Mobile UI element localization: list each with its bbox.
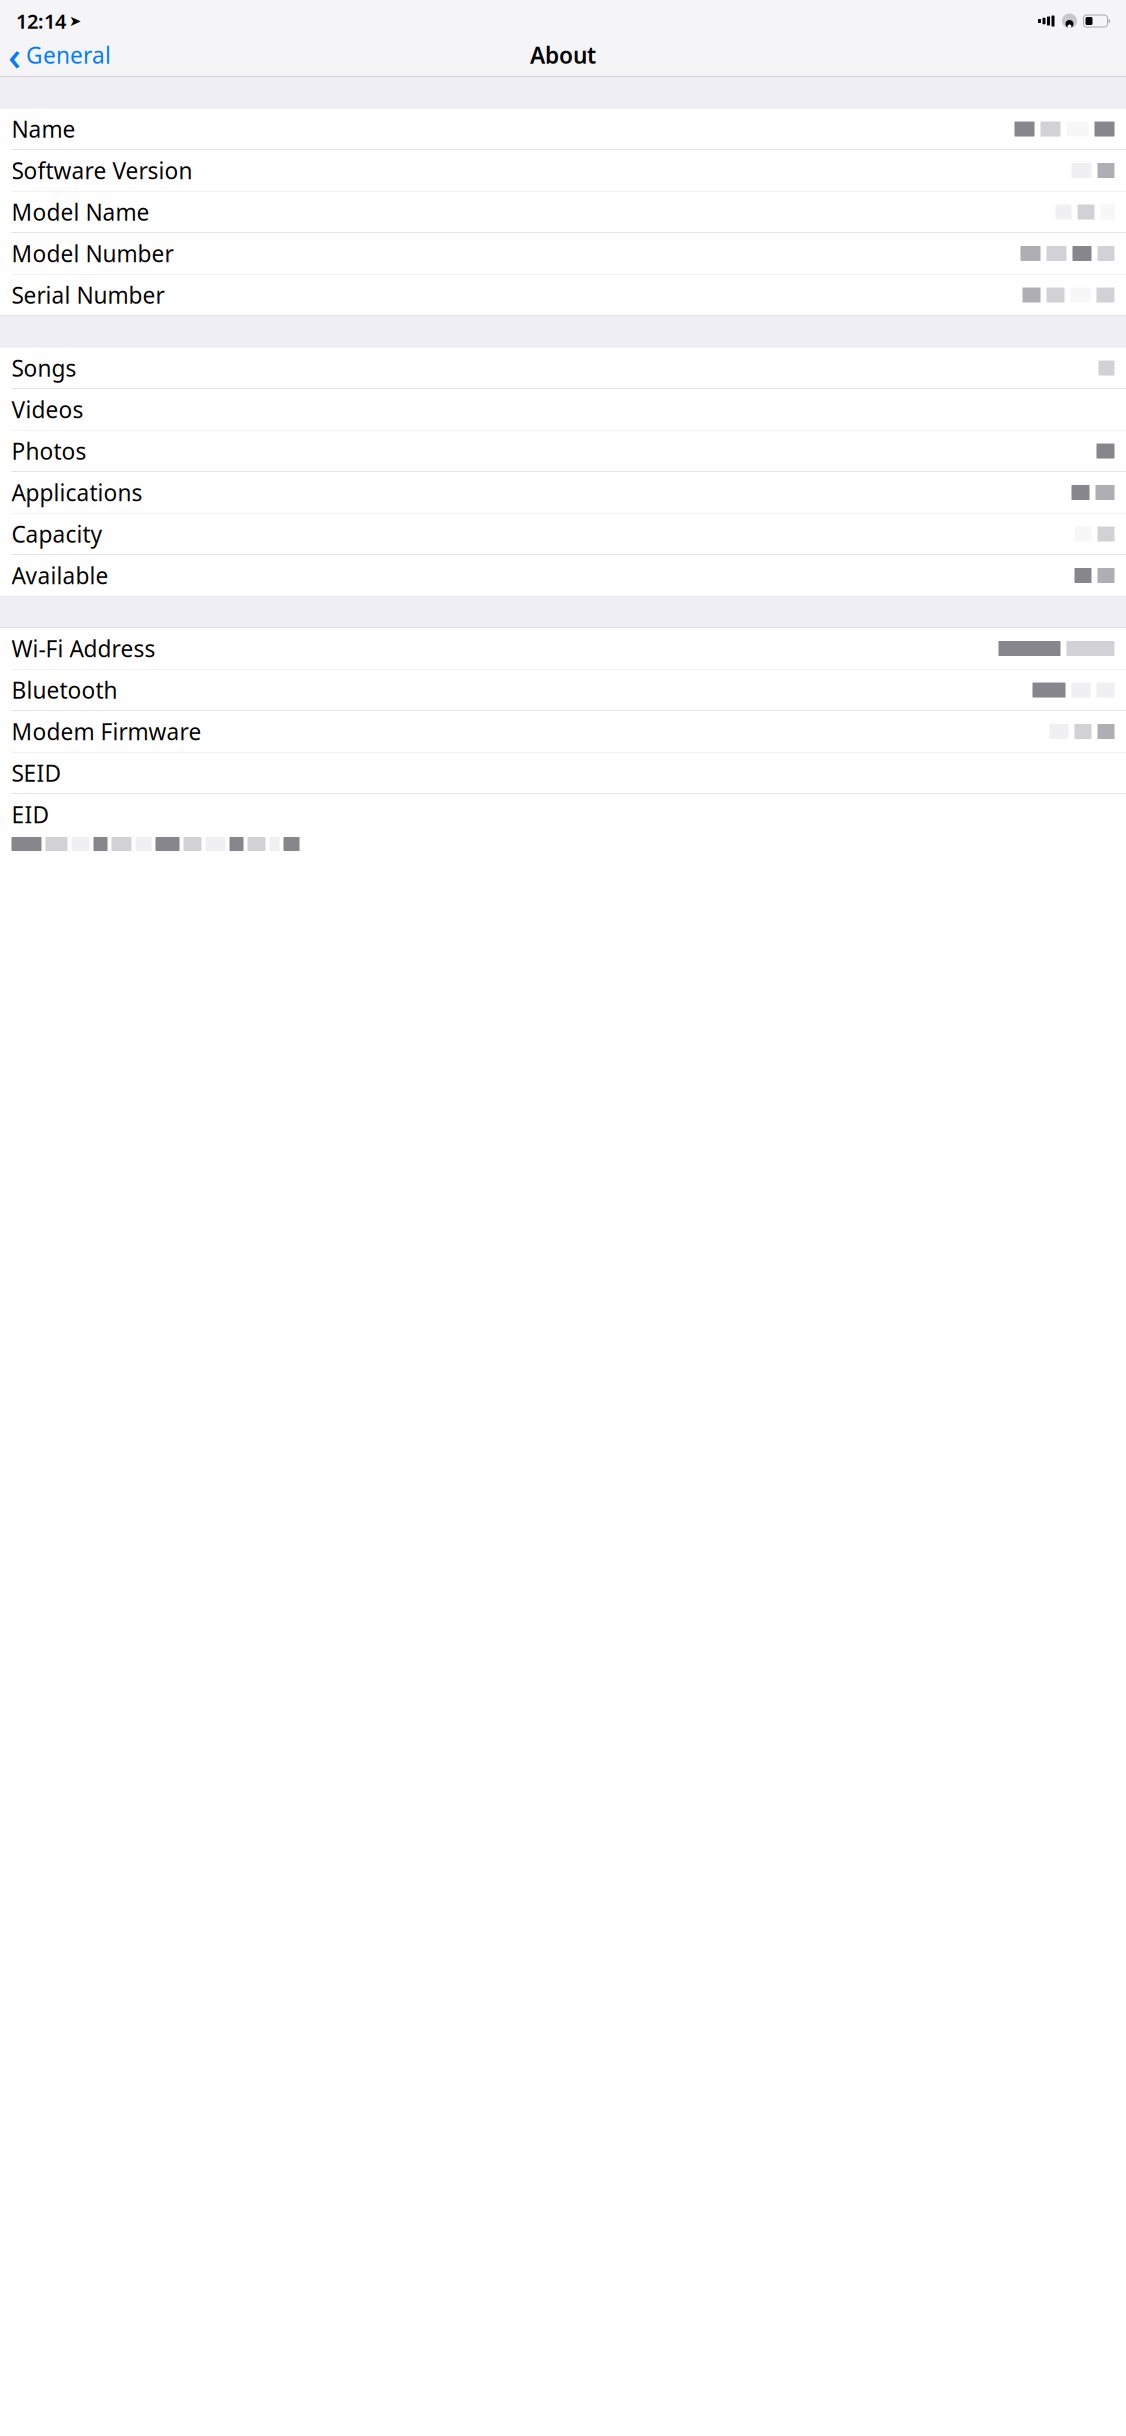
button[interactable]: Available <box>0 555 1126 596</box>
staticText: Applications <box>11 477 142 507</box>
staticText: Software Version <box>11 155 192 185</box>
button[interactable]: EID <box>0 794 1126 853</box>
button[interactable]: Bluetooth <box>0 669 1126 710</box>
button[interactable]: Photos <box>0 430 1126 471</box>
button[interactable]: Model Name <box>0 191 1126 232</box>
staticText: ➤ <box>69 13 81 29</box>
staticText: Name <box>11 114 75 144</box>
staticText: Capacity <box>11 519 102 549</box>
staticText: Modem Firmware <box>11 716 201 746</box>
button[interactable]: Wi-Fi Address <box>0 628 1126 669</box>
button[interactable]: Videos <box>0 389 1126 430</box>
staticText: Videos <box>11 394 83 424</box>
staticText: Model Name <box>11 197 149 227</box>
staticText: General <box>26 40 111 70</box>
button[interactable]: Name <box>0 108 1126 149</box>
staticText: Photos <box>11 436 86 466</box>
staticText: ‹ <box>8 28 21 81</box>
button[interactable]: Capacity <box>0 513 1126 554</box>
staticText: Wi-Fi Address <box>11 633 155 663</box>
staticText: EID <box>11 799 49 829</box>
button[interactable]: Applications <box>0 472 1126 513</box>
staticText: SEID <box>11 758 61 788</box>
button[interactable]: Software Version <box>0 150 1126 191</box>
staticText: About <box>530 40 596 70</box>
staticText: Songs <box>11 353 76 383</box>
button[interactable]: Modem Firmware <box>0 711 1126 752</box>
button[interactable]: SEID <box>0 752 1126 793</box>
button[interactable]: Serial Number <box>0 274 1126 315</box>
staticText: Model Number <box>11 238 173 268</box>
staticText: Bluetooth <box>11 675 117 705</box>
button[interactable]: ‹ <box>0 33 119 77</box>
staticText: Serial Number <box>11 280 164 310</box>
staticText: 12:14 <box>16 8 66 34</box>
button[interactable]: Songs <box>0 347 1126 388</box>
button[interactable]: Model Number <box>0 233 1126 274</box>
staticText: Available <box>11 560 108 590</box>
